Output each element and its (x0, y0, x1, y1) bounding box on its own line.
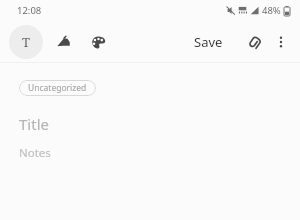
staticText: 12:08 (17, 4, 42, 17)
button[interactable]: Notes (19, 145, 51, 161)
button[interactable]: Attach (239, 28, 267, 56)
button[interactable]: Palette (83, 27, 113, 57)
staticText: 48% (262, 4, 281, 17)
button[interactable]: Draw (49, 27, 79, 57)
staticText: Save (194, 33, 223, 51)
button[interactable]: Save (188, 29, 229, 55)
button[interactable]: Uncategorized (19, 80, 96, 96)
button[interactable]: Text mode (9, 25, 43, 59)
staticText: T (22, 33, 30, 51)
staticText: Uncategorized (28, 82, 87, 94)
button[interactable]: More options (268, 29, 294, 55)
button[interactable]: Title (19, 114, 49, 134)
